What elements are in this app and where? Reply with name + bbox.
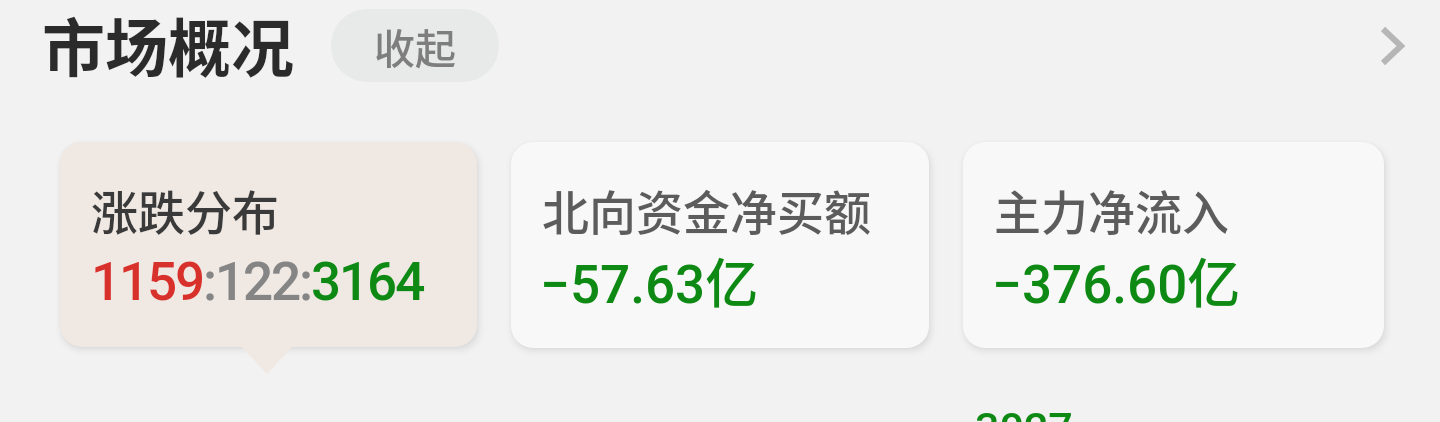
staticText: 涨跌分布 (91, 175, 279, 243)
button[interactable]: 主力净流入 (963, 142, 1384, 348)
staticText: 3027 (975, 403, 1073, 422)
staticText: 1159:122:3164 (91, 251, 424, 313)
staticText: −376.60亿 (992, 242, 1241, 319)
staticText: 收起 (374, 16, 456, 75)
button[interactable]: 北向资金净买额 (511, 142, 929, 348)
button[interactable]: 收起 (331, 9, 499, 82)
button[interactable]: 涨跌分布 (60, 142, 477, 347)
staticText: 主力净流入 (994, 175, 1229, 243)
staticText: 市场概况 (42, 0, 294, 89)
staticText: 北向资金净买额 (542, 175, 871, 243)
staticText: −57.63亿 (540, 242, 759, 319)
button[interactable]: 查看市场概况详情 (1361, 15, 1423, 77)
